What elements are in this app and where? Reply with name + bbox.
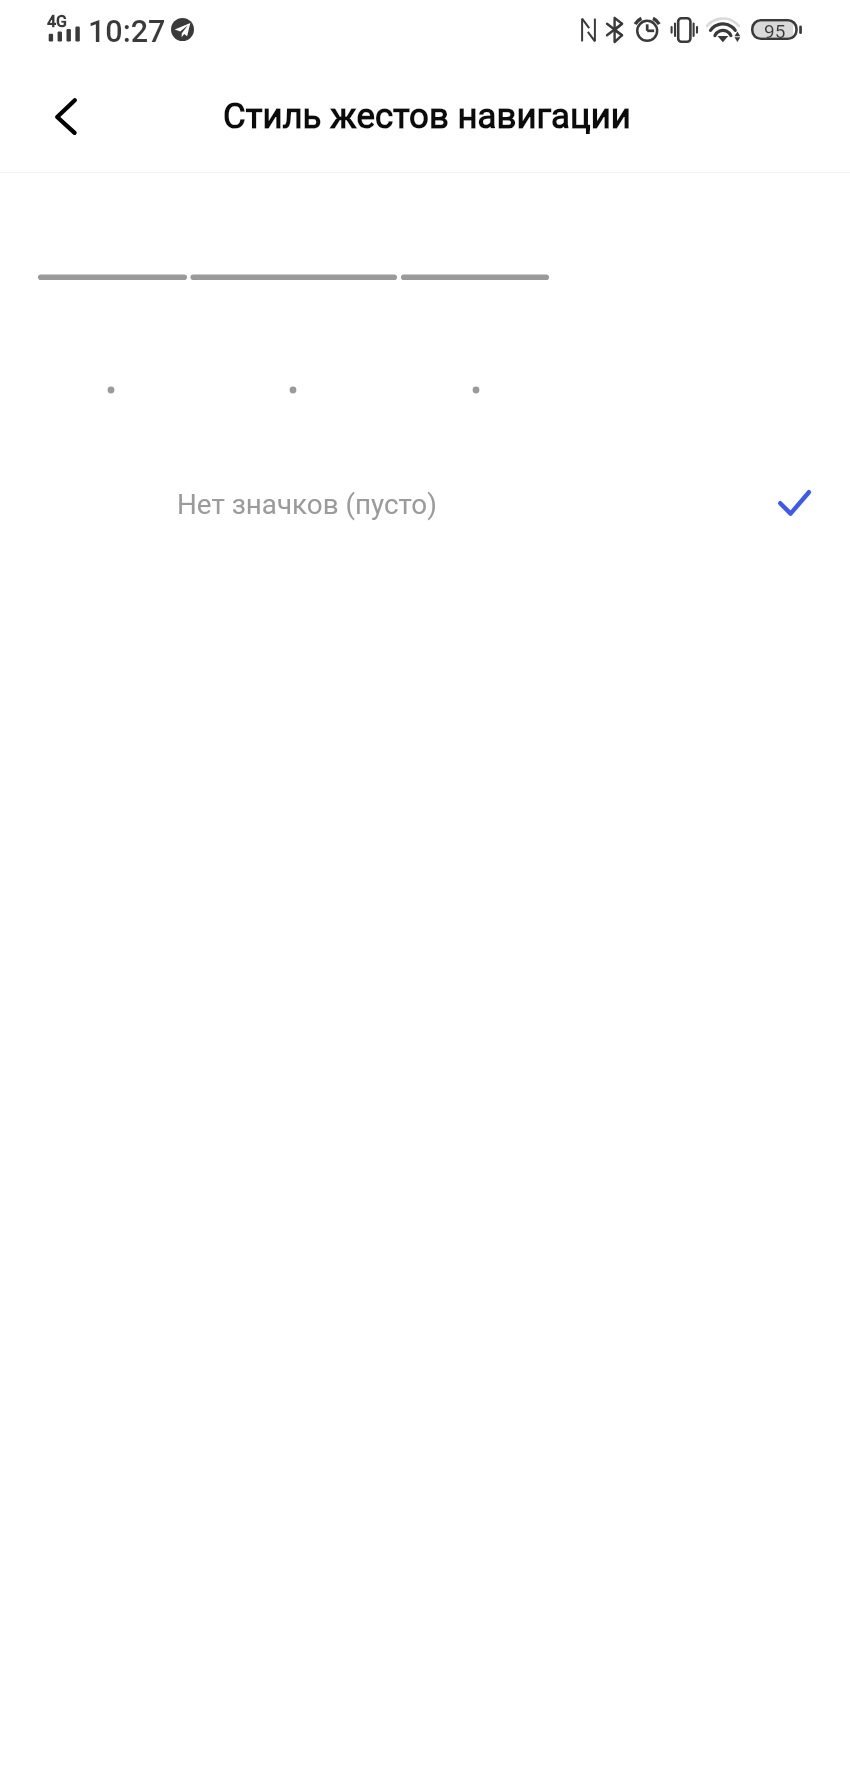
staticText: Стиль жестов навигации: [223, 96, 631, 137]
staticText: Нет значков (пусто): [177, 488, 437, 521]
staticText: 4G: [47, 12, 67, 31]
button[interactable]: Нет значков (пусто): [0, 468, 850, 538]
button[interactable]: Назад: [36, 86, 98, 148]
staticText: 10:27: [88, 14, 166, 44]
staticText: 95: [764, 20, 786, 42]
